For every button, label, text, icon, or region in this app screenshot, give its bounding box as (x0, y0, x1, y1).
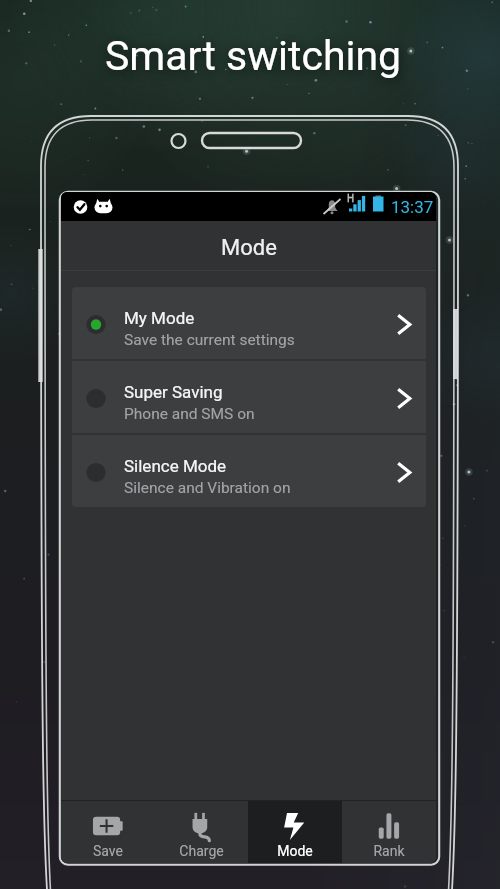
staticText: Mode (277, 843, 313, 859)
button[interactable]: Save (61, 801, 154, 863)
button[interactable]: Silence Mode (72, 435, 426, 507)
staticText: H (347, 193, 355, 205)
staticText: My Mode (124, 308, 195, 328)
staticText: Silence Mode (124, 456, 227, 476)
button[interactable]: Super Saving (72, 361, 426, 433)
button[interactable]: My Mode (72, 287, 426, 359)
staticText: Save (93, 843, 123, 859)
button[interactable]: Rank (342, 801, 436, 863)
staticText: Rank (373, 843, 405, 859)
staticText: 13:37 (391, 197, 434, 217)
staticText: Silence and Vibration on (124, 479, 291, 497)
staticText: Charge (179, 843, 224, 859)
staticText: Phone and SMS on (124, 405, 255, 423)
staticText: Super Saving (124, 382, 223, 402)
staticText: Save the current settings (124, 331, 295, 349)
button[interactable]: Charge (154, 801, 248, 863)
staticText: Mode (221, 235, 277, 261)
staticText: Smart switching (105, 32, 402, 80)
button[interactable]: Mode (248, 801, 342, 863)
